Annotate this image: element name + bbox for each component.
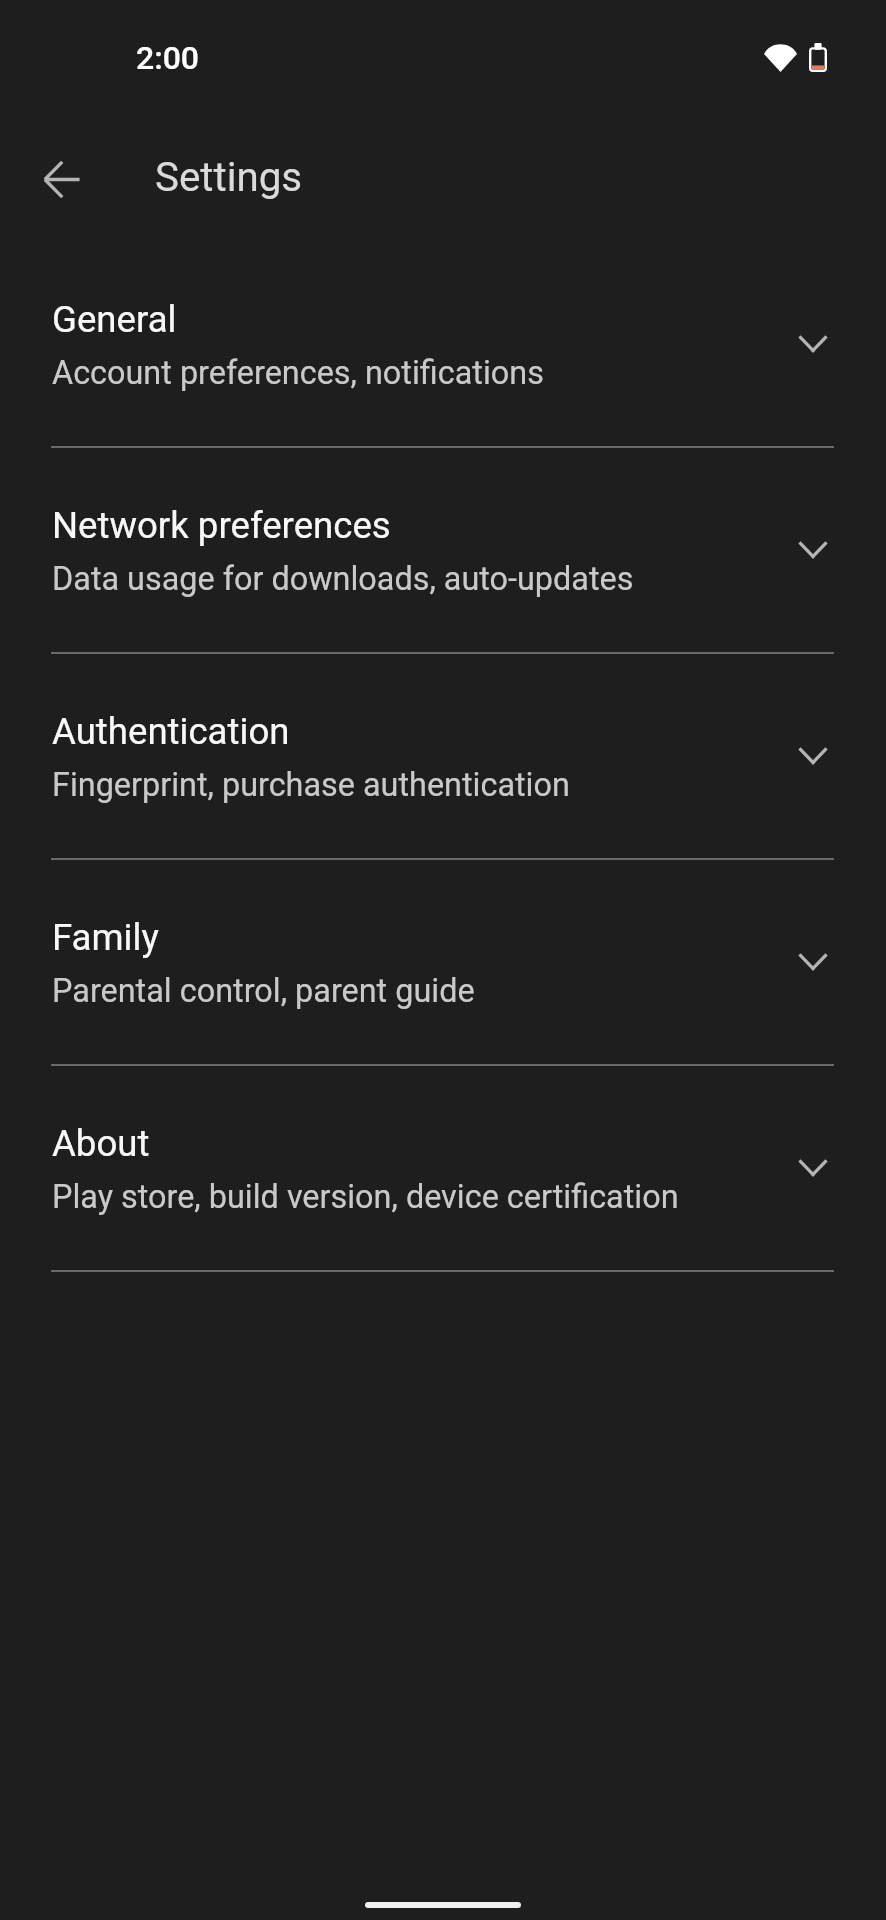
button[interactable]: Family — [0, 858, 886, 1062]
staticText: Account preferences, notifications — [52, 354, 544, 392]
staticText: Play store, build version, device certif… — [52, 1178, 679, 1216]
staticText: Parental control, parent guide — [52, 972, 475, 1010]
staticText: Settings — [155, 154, 303, 201]
staticText: Network preferences — [52, 504, 391, 547]
staticText: Fingerprint, purchase authentication — [52, 766, 570, 804]
button[interactable]: Navigate up — [30, 148, 92, 210]
other: Expand Network preferences — [799, 542, 827, 558]
staticText: 2:00 — [136, 39, 200, 77]
other: Expand About — [799, 1160, 827, 1176]
staticText: About — [52, 1122, 150, 1165]
staticText: General — [52, 298, 177, 341]
other: Expand General — [799, 336, 827, 352]
other: Expand Family — [799, 954, 827, 970]
button[interactable]: Network preferences — [0, 446, 886, 650]
button[interactable]: About — [0, 1064, 886, 1268]
other: Expand Authentication — [799, 748, 827, 764]
staticText: Authentication — [52, 710, 290, 753]
button[interactable]: General — [0, 240, 886, 444]
staticText: Data usage for downloads, auto-updates — [52, 560, 634, 598]
staticText: Family — [52, 916, 159, 959]
button[interactable]: Authentication — [0, 652, 886, 856]
